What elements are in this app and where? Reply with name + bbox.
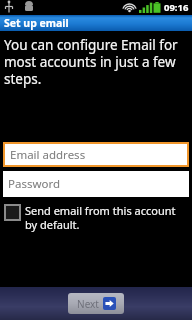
staticText: 09:16 <box>164 1 189 14</box>
other: Next <box>103 297 116 310</box>
staticText: Set up email <box>4 16 69 30</box>
staticText: Email address <box>10 147 86 163</box>
button[interactable]: Email address <box>5 144 187 165</box>
staticText: Next <box>77 297 99 311</box>
button[interactable]: Send email from this account by default. <box>4 203 186 232</box>
button[interactable]: Next <box>68 293 124 314</box>
staticText: Send email from this account by default. <box>25 203 186 232</box>
button[interactable]: Password <box>3 171 189 197</box>
staticText: Password <box>8 176 61 192</box>
staticText: You can configure Email for most account… <box>4 36 184 88</box>
